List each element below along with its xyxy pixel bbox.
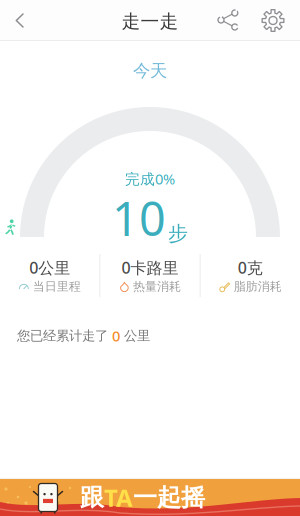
button[interactable]: Settings (251, 0, 295, 41)
staticText: 公里 (120, 328, 150, 344)
staticText: TA (104, 482, 133, 513)
staticText: 跟 (80, 483, 104, 512)
staticText: 一起摇 (133, 483, 205, 512)
staticText: 0公里 (29, 257, 70, 278)
button[interactable]: Share (206, 0, 251, 41)
staticText: 0克 (238, 257, 263, 278)
staticText: 步 (168, 221, 188, 246)
staticText: 10 (112, 187, 166, 249)
staticText: 走一走 (121, 10, 178, 33)
button[interactable]: Promotional banner (0, 479, 300, 516)
staticText: 当日里程 (33, 279, 81, 294)
staticText: 您已经累计走了 (17, 328, 112, 344)
staticText: 0卡路里 (121, 257, 178, 278)
staticText: 热量消耗 (133, 279, 181, 294)
staticText: 今天 (133, 60, 167, 81)
staticText: 0 (112, 326, 120, 345)
staticText: 完成0% (125, 169, 175, 188)
button[interactable]: Back (2, 0, 38, 41)
staticText: 脂肪消耗 (234, 279, 282, 294)
